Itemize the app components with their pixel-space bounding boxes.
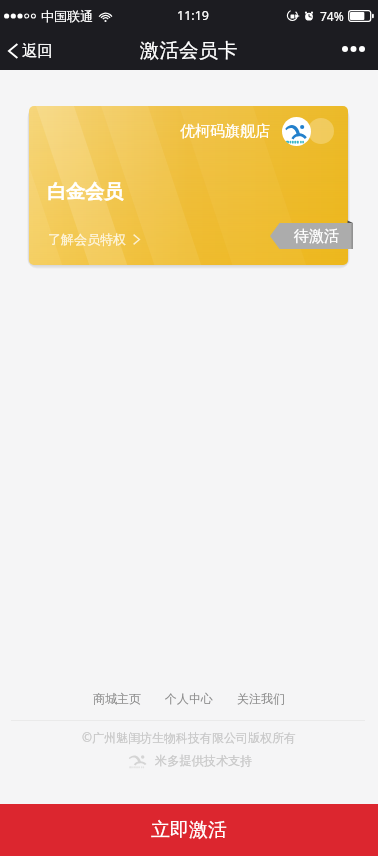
staticText: 11:19 — [177, 7, 209, 24]
button[interactable]: 返回 — [0, 34, 65, 68]
button[interactable]: 优柯码旗舰店 — [29, 106, 348, 265]
button[interactable]: 商城主页 — [81, 686, 153, 711]
button[interactable]: More options — [329, 36, 378, 66]
button[interactable]: 关注我们 — [225, 686, 297, 711]
staticText: 白金会员 — [47, 180, 123, 204]
staticText: 关注我们 — [237, 691, 285, 706]
staticText: 立即激活 — [151, 818, 227, 842]
staticText: 商城主页 — [93, 691, 141, 706]
staticText: 个人中心 — [165, 691, 213, 706]
staticText: 优柯码旗舰店 — [180, 122, 270, 141]
button[interactable]: 个人中心 — [153, 686, 225, 711]
button[interactable]: 了解会员特权 — [48, 231, 140, 247]
staticText: 激活会员卡 — [140, 38, 238, 63]
staticText: ©广州魅闺坊生物科技有限公司版权所有 — [82, 729, 296, 745]
staticText: 74% — [320, 8, 344, 24]
staticText: 返回 — [22, 41, 53, 61]
staticText: 中国联通 — [41, 8, 93, 24]
staticText: 了解会员特权 — [48, 231, 126, 247]
staticText: 待激活 — [294, 227, 339, 246]
button[interactable]: 立即激活 — [0, 804, 378, 856]
staticText: 米多提供技术支持 — [155, 753, 253, 768]
